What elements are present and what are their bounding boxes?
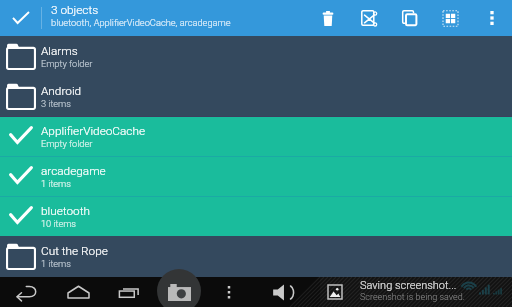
staticText: 3 items [41,98,71,109]
staticText: Alarms [41,44,78,58]
button[interactable]: Cut [348,0,389,36]
button[interactable]: More options [471,0,512,36]
staticText: arcadegame [41,164,106,178]
staticText: 3 objects [51,3,99,17]
staticText: Cut the Rope [41,244,108,258]
button[interactable]: More [216,277,242,307]
button[interactable]: Alarms [0,36,512,76]
staticText: bluetooth, ApplifierVideoCache, arcadega… [51,17,231,28]
button[interactable]: Copy [389,0,430,36]
staticText: 1 items [41,258,71,269]
button[interactable]: Delete [307,0,348,36]
button[interactable]: Back [14,277,40,307]
button[interactable]: arcadegame [0,156,512,196]
staticText: bluetooth [41,204,90,218]
button[interactable]: Home [65,277,91,307]
button[interactable]: bluetooth [0,196,512,236]
button[interactable]: Saving screenshot notification [320,277,512,307]
staticText: Android [41,84,82,98]
staticText: Empty folder [41,58,93,69]
button[interactable]: ApplifierVideoCache [0,116,512,156]
button[interactable]: Select all [430,0,471,36]
button[interactable]: Cut the Rope [0,236,512,276]
staticText: 1 items [41,178,71,189]
button[interactable]: Recent apps [116,277,142,307]
button[interactable]: Camera [156,277,202,307]
staticText: Empty folder [41,138,93,149]
staticText: Saving screenshot... [360,279,457,292]
staticText: 10 items [41,218,77,229]
staticText: ApplifierVideoCache [41,124,146,138]
button[interactable]: Android [0,76,512,116]
button[interactable]: Done [0,0,41,36]
button[interactable]: Volume [270,277,296,307]
staticText: Screenshot is being saved. [360,292,465,303]
